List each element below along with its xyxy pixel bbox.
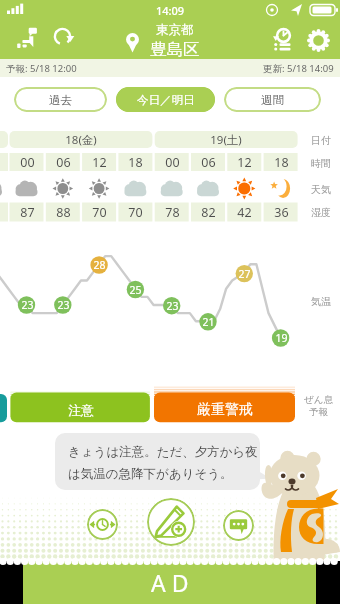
staticText: 日付 xyxy=(311,134,331,147)
staticText: 23 xyxy=(166,299,179,313)
staticText: 注意 xyxy=(68,402,94,418)
staticText: 東京都 xyxy=(156,22,194,38)
staticText: 21 xyxy=(202,315,215,329)
staticText: A D xyxy=(151,567,189,598)
button[interactable]: Settings xyxy=(301,23,335,57)
staticText: 18 xyxy=(274,154,289,171)
staticText: 70 xyxy=(92,204,107,221)
staticText: 天気 xyxy=(311,183,331,196)
staticText: 06 xyxy=(56,154,71,171)
button[interactable]: Graph xyxy=(12,20,50,58)
staticText: きょうは注意。ただ、夕方から夜 xyxy=(68,444,258,460)
staticText: 00 xyxy=(165,154,180,171)
button[interactable]: History xyxy=(264,23,298,57)
staticText: 予報 xyxy=(309,406,328,418)
staticText: 23 xyxy=(57,298,70,312)
staticText: 12 xyxy=(92,154,107,171)
staticText: 予報: 5/18 12:00 xyxy=(6,62,77,75)
button[interactable]: 過去 xyxy=(14,87,107,112)
button[interactable]: 今日／明日 xyxy=(116,87,215,112)
staticText: 78 xyxy=(165,204,180,221)
staticText: 27 xyxy=(238,267,251,281)
staticText: 18(金) xyxy=(65,132,97,148)
staticText: 42 xyxy=(237,204,252,221)
staticText: 厳重警戒 xyxy=(197,401,253,419)
button[interactable]: Add note xyxy=(147,498,195,546)
staticText: 更新: 5/18 14:09 xyxy=(263,62,334,75)
button[interactable]: 東京都 xyxy=(126,22,200,57)
staticText: 19(土) xyxy=(210,132,242,148)
staticText: 82 xyxy=(201,204,216,221)
staticText: 14:09 xyxy=(156,3,185,18)
staticText: 19 xyxy=(275,331,288,345)
staticText: 70 xyxy=(128,204,143,221)
staticText: 18 xyxy=(128,154,143,171)
button[interactable]: Previous times xyxy=(87,509,118,540)
staticText: 今日／明日 xyxy=(137,93,195,107)
staticText: 88 xyxy=(56,204,71,221)
staticText: 湿度 xyxy=(311,206,331,219)
staticText: 87 xyxy=(20,204,35,221)
button[interactable]: A D xyxy=(23,561,316,604)
staticText: は気温の急降下がありそう。 xyxy=(68,466,233,482)
staticText: 23 xyxy=(21,298,34,312)
staticText: 週間 xyxy=(261,93,284,107)
staticText: 12 xyxy=(237,154,252,171)
staticText: 06 xyxy=(201,154,216,171)
staticText: 気温 xyxy=(311,295,331,308)
staticText: 豊島区 xyxy=(150,39,200,57)
staticText: 25 xyxy=(129,283,142,297)
staticText: 過去 xyxy=(49,93,72,107)
staticText: ぜん息 xyxy=(304,394,333,406)
staticText: 36 xyxy=(274,204,289,221)
button[interactable]: 週間 xyxy=(224,87,321,112)
staticText: 時間 xyxy=(311,157,331,170)
staticText: 28 xyxy=(93,258,106,272)
staticText: 00 xyxy=(20,154,35,171)
button[interactable]: Refresh xyxy=(44,20,80,56)
button[interactable]: Comments xyxy=(223,510,254,541)
